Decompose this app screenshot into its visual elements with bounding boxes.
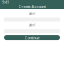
- staticText: 9:41: [2, 0, 9, 5]
- staticText: Label: [28, 23, 35, 27]
- staticText: Create Account: [18, 4, 45, 9]
- staticText: Label: [28, 12, 35, 15]
- button[interactable]: Continue: [4, 35, 60, 40]
- staticText: Continue: [24, 35, 39, 40]
